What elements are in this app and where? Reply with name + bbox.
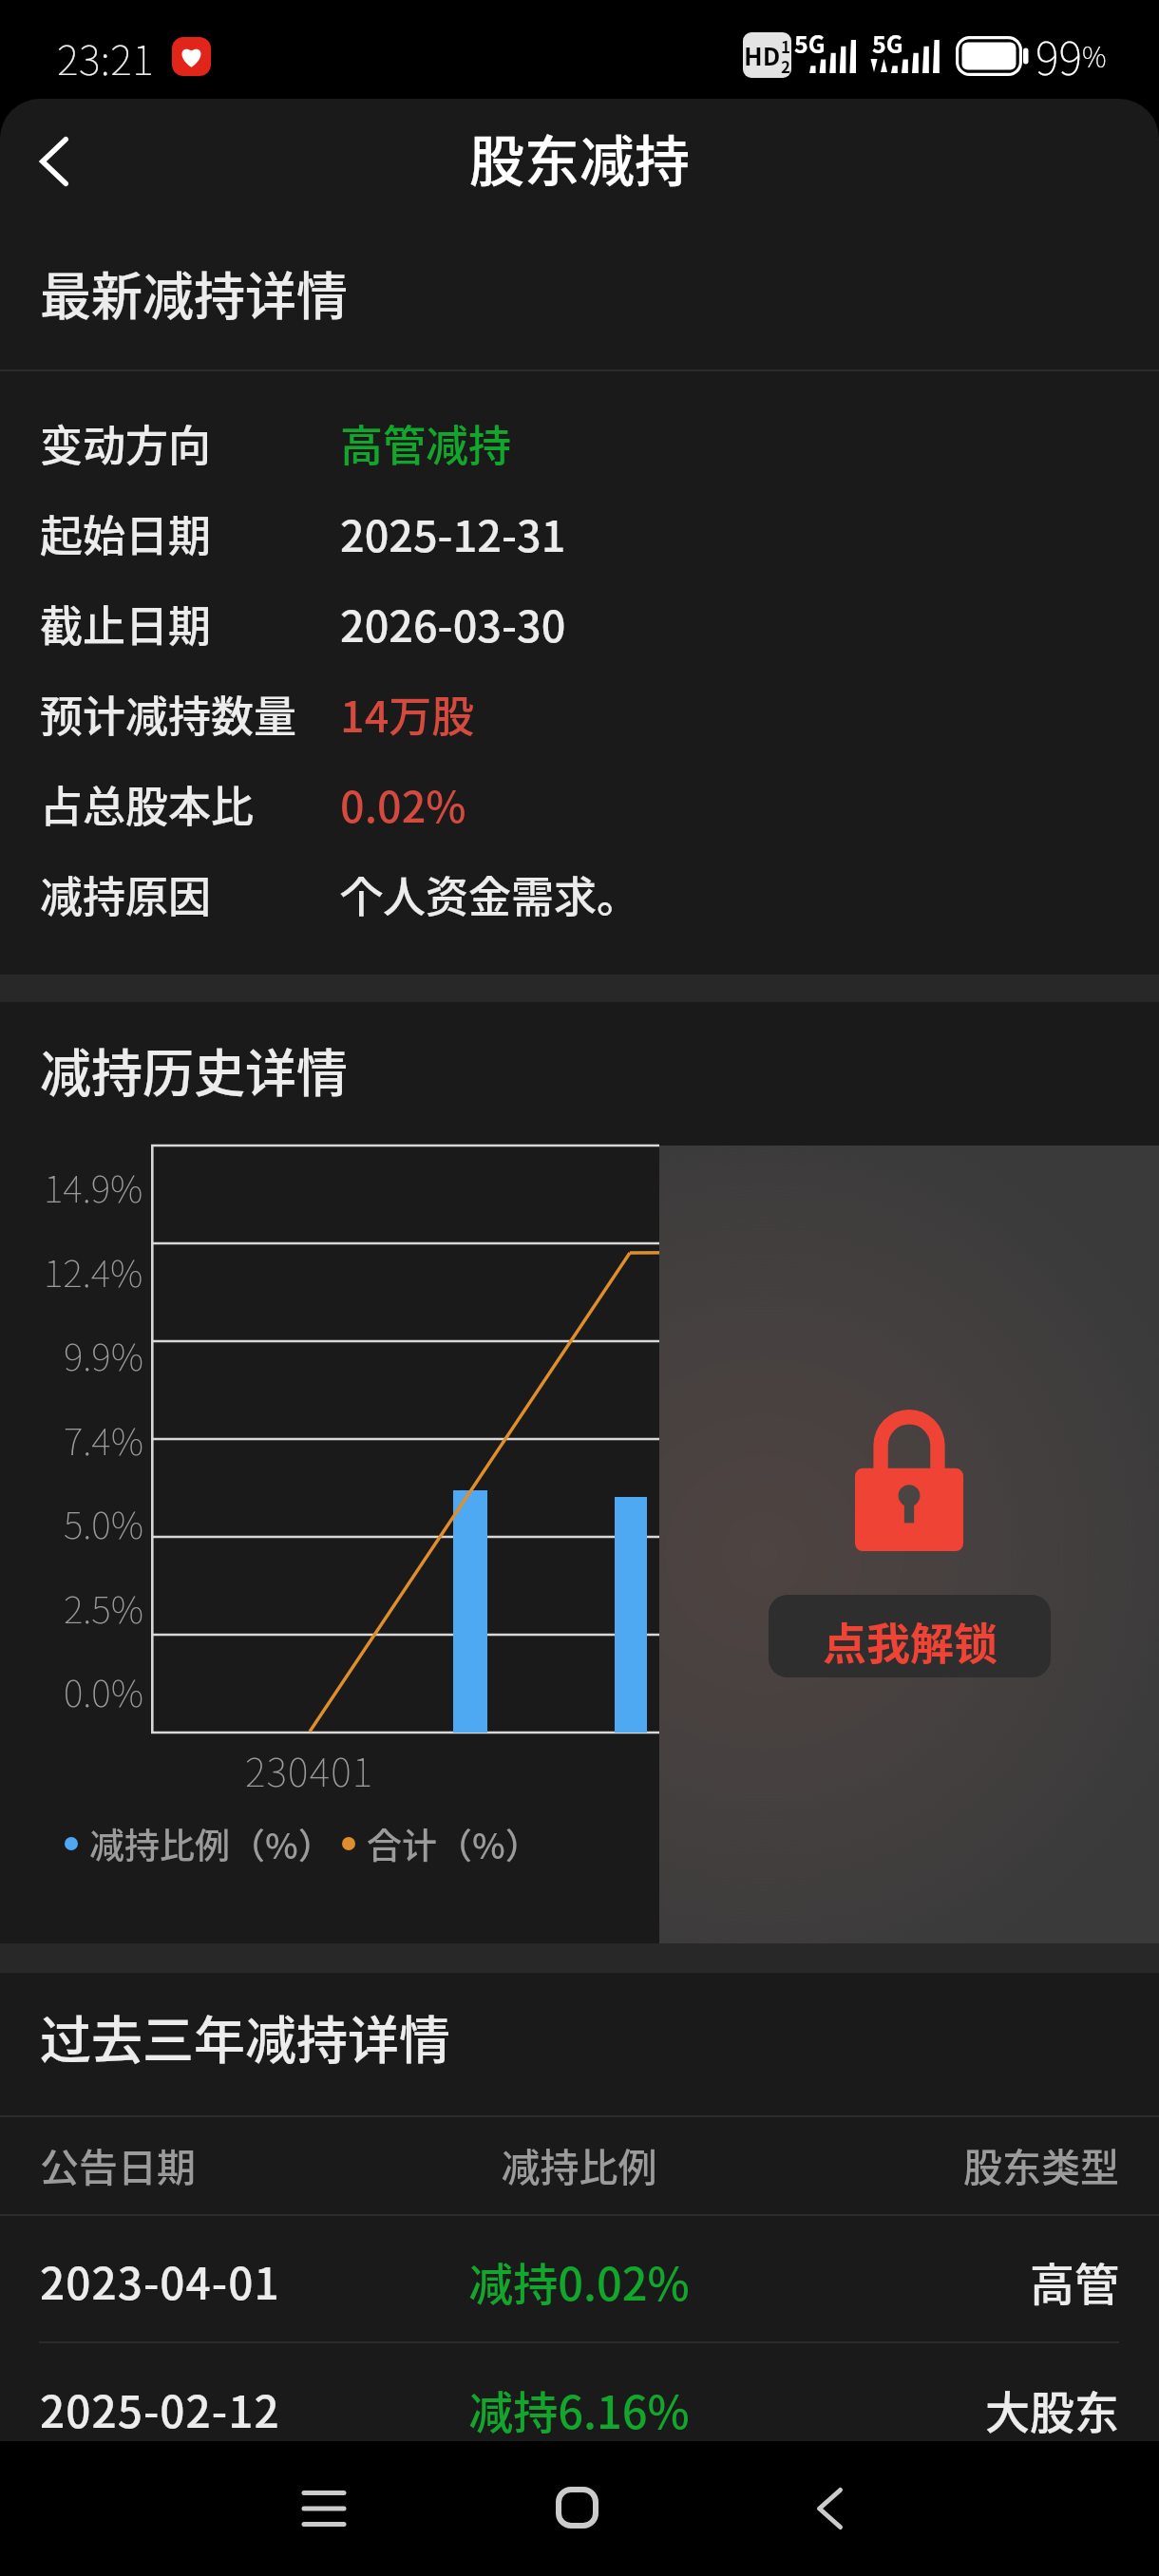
- staticText: 起始日期: [40, 502, 212, 564]
- staticText: 过去三年减持详情: [40, 1999, 450, 2074]
- staticText: 5G: [794, 26, 826, 60]
- staticText: 0.02%: [340, 773, 466, 835]
- staticText: 个人资金需求。: [340, 863, 640, 925]
- staticText: 0.0%: [64, 1664, 143, 1717]
- staticText: 99: [1035, 23, 1082, 80]
- staticText: 减持比例: [399, 2136, 759, 2192]
- staticText: 5G: [872, 26, 903, 60]
- staticText: 2025-02-12: [40, 2377, 399, 2441]
- button[interactable]: 2025-02-12: [0, 2349, 1159, 2441]
- staticText: 1: [781, 34, 791, 58]
- staticText: 大股东: [759, 2377, 1119, 2441]
- staticText: 最新减持详情: [40, 256, 348, 330]
- staticText: 点我解锁: [823, 1609, 997, 1673]
- staticText: 变动方向: [40, 412, 212, 474]
- button[interactable]: Back: [0, 103, 108, 236]
- staticText: %: [1082, 35, 1107, 75]
- staticText: 减持历史详情: [40, 1032, 348, 1107]
- staticText: 减持0.02%: [399, 2248, 759, 2313]
- staticText: 占总股本比: [40, 773, 255, 835]
- staticText: 2023-04-01: [40, 2249, 399, 2313]
- staticText: 14万股: [340, 683, 475, 745]
- staticText: 2.5%: [64, 1581, 143, 1634]
- staticText: HD: [744, 37, 781, 73]
- button[interactable]: 2023-04-01: [0, 2221, 1159, 2340]
- button[interactable]: Back: [768, 2447, 891, 2570]
- staticText: 2025-12-31: [340, 502, 566, 564]
- staticText: 230401: [245, 1741, 374, 1797]
- staticText: 股东减持: [469, 118, 691, 198]
- staticText: 预计减持数量: [40, 683, 297, 745]
- staticText: 5.0%: [64, 1496, 143, 1549]
- button[interactable]: Home: [515, 2446, 638, 2569]
- staticText: 7.4%: [64, 1412, 143, 1466]
- staticText: 股东类型: [759, 2136, 1119, 2192]
- staticText: 合计（%）: [367, 1818, 541, 1869]
- staticText: 减持原因: [40, 863, 212, 925]
- staticText: 高管减持: [340, 412, 512, 474]
- button[interactable]: Recent apps: [262, 2447, 386, 2570]
- staticText: 截止日期: [40, 593, 212, 654]
- button[interactable]: 点我解锁: [769, 1595, 1051, 1677]
- staticText: 2: [781, 54, 791, 76]
- staticText: 14.9%: [44, 1160, 143, 1213]
- staticText: 12.4%: [44, 1244, 143, 1297]
- staticText: 减持比例（%）: [89, 1818, 333, 1869]
- staticText: 减持6.16%: [399, 2377, 759, 2441]
- staticText: 23:21: [57, 28, 155, 85]
- staticText: 高管: [759, 2248, 1119, 2313]
- staticText: 2026-03-30: [340, 593, 566, 654]
- staticText: 公告日期: [40, 2136, 399, 2192]
- staticText: 9.9%: [64, 1328, 143, 1381]
